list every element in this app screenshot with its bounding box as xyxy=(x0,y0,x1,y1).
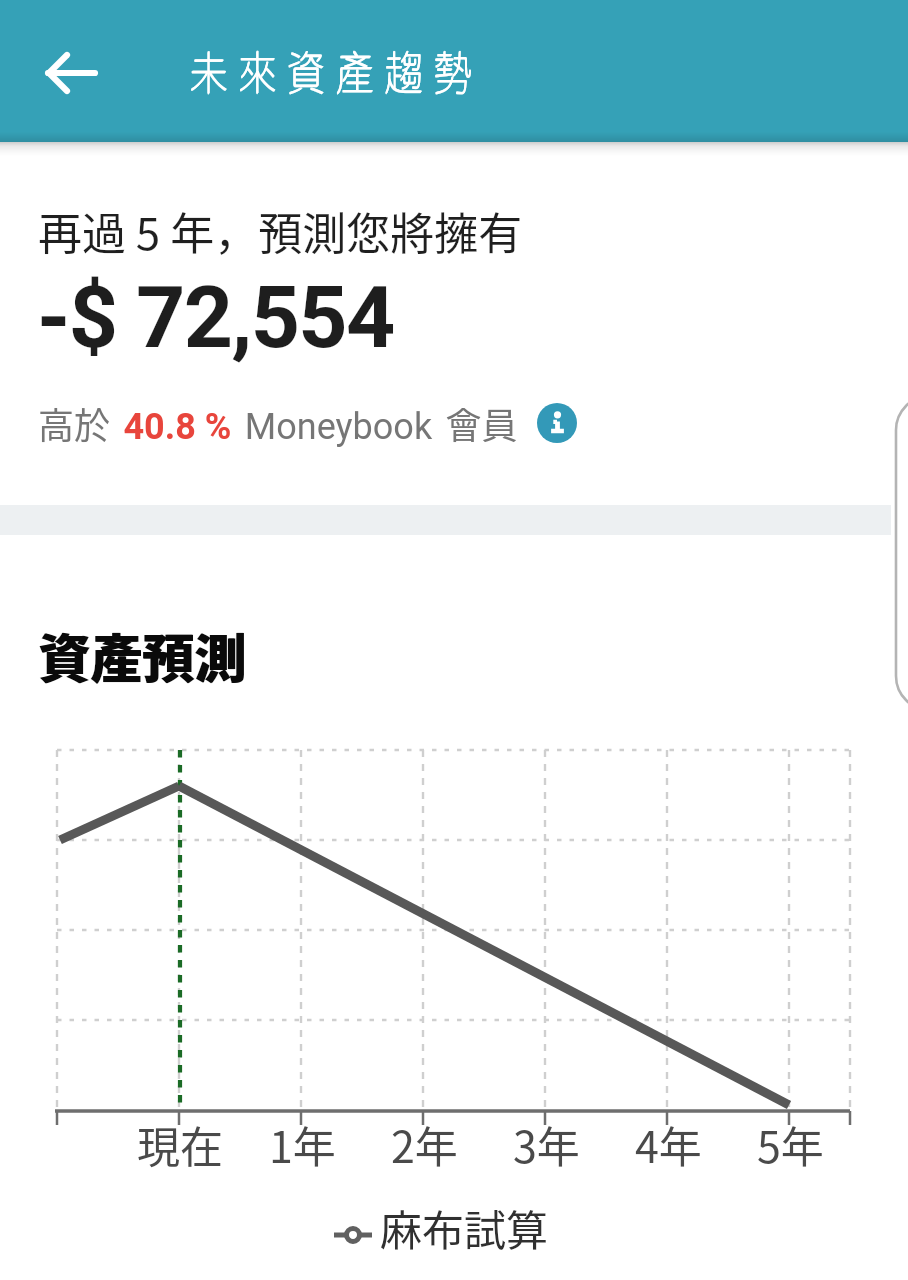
staticText: 麻布試算 xyxy=(380,1197,549,1258)
staticText: 資產預測 xyxy=(39,618,248,693)
button[interactable]: Back xyxy=(27,38,97,108)
staticText: 4年 xyxy=(635,1113,702,1175)
staticText: 未來資產趨勢 xyxy=(190,44,482,99)
staticText: -$ 72,554 xyxy=(37,267,394,368)
staticText: 現在 xyxy=(137,1113,223,1175)
staticText: 高於 40.8 % Moneybook 會員 xyxy=(38,397,518,449)
staticText: 資產預測 xyxy=(38,618,247,693)
staticText: 未來資產趨勢 xyxy=(189,44,482,99)
button[interactable]: Info xyxy=(537,403,577,443)
staticText: 1年 xyxy=(269,1113,336,1175)
staticText: 3年 xyxy=(513,1113,580,1175)
staticText: 再過 5 年，預測您將擁有 xyxy=(38,199,523,263)
staticText: 2年 xyxy=(391,1113,458,1175)
staticText: 5年 xyxy=(757,1113,824,1175)
staticText: 未來資產趨勢 xyxy=(189,45,482,100)
